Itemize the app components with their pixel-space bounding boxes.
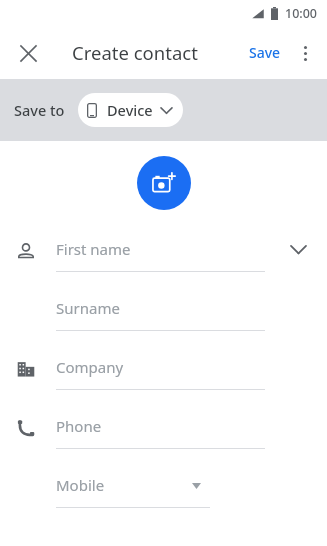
button[interactable]: First name [0, 224, 327, 283]
button[interactable]: Company [0, 342, 327, 401]
button[interactable]: Expand name fields [281, 232, 315, 266]
staticText: Device [107, 100, 153, 120]
button[interactable]: Close [10, 35, 46, 71]
staticText: Save [249, 43, 281, 62]
button[interactable]: Device [78, 93, 183, 127]
button[interactable]: Surname [0, 283, 327, 342]
staticText: Create contact [72, 40, 198, 65]
button[interactable]: More options [288, 36, 322, 70]
staticText: Phone [56, 416, 102, 436]
button[interactable]: Save [245, 39, 285, 66]
staticText: First name [56, 239, 131, 259]
staticText: Mobile [56, 475, 105, 495]
button[interactable]: Phone [0, 401, 327, 460]
staticText: 10:00 [285, 5, 318, 22]
staticText: Save to [14, 100, 65, 120]
button[interactable]: Add photo [137, 156, 191, 210]
staticText: Surname [56, 298, 120, 318]
button[interactable]: Mobile [0, 460, 327, 519]
staticText: Company [56, 357, 124, 377]
